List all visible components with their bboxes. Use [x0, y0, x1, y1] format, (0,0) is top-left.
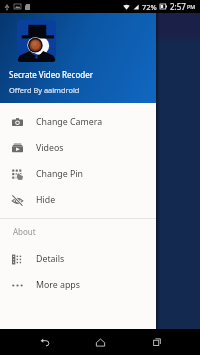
- button[interactable]: Change Pin: [0, 161, 156, 187]
- staticText: PM: [187, 3, 196, 10]
- staticText: Secrate Video Recoder: [9, 69, 93, 80]
- staticText: More apps: [36, 279, 80, 291]
- button[interactable]: Change Camera: [0, 109, 156, 135]
- staticText: Change Camera: [36, 116, 103, 128]
- staticText: Hide: [36, 194, 56, 206]
- staticText: Details: [36, 253, 65, 265]
- staticText: 2:57: [170, 1, 186, 12]
- staticText: About: [13, 226, 36, 237]
- button[interactable]: Secrate Video Recoder: [0, 0, 156, 103]
- staticText: Change Pin: [36, 168, 84, 180]
- staticText: Offerd By aaimdroid: [9, 85, 80, 95]
- button[interactable]: Videos: [0, 135, 156, 161]
- staticText: 72%: [142, 2, 157, 12]
- button[interactable]: Home: [87, 329, 113, 355]
- button[interactable]: Recent apps: [144, 329, 170, 355]
- staticText: Videos: [36, 142, 64, 154]
- button[interactable]: Hide: [0, 187, 156, 213]
- button[interactable]: Details: [0, 246, 156, 272]
- button[interactable]: More apps: [0, 272, 156, 298]
- button[interactable]: Back: [31, 329, 57, 355]
